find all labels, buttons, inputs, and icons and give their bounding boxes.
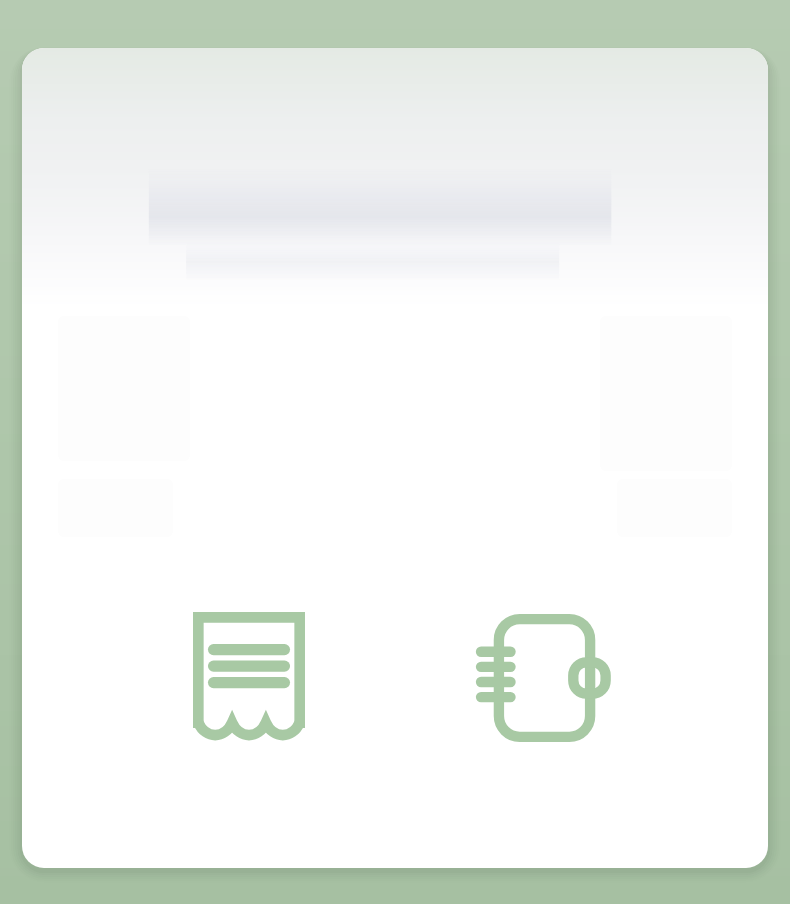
button[interactable]: Address book — [451, 593, 631, 763]
button[interactable]: Receipts — [159, 593, 339, 763]
